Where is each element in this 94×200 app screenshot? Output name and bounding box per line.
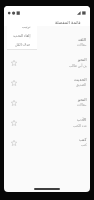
other: Favorite: [9, 118, 18, 127]
staticText: الأدب: [77, 117, 87, 122]
button[interactable]: ترتيب: [7, 22, 37, 31]
staticText: النحو: [78, 97, 87, 102]
other: Favorite: [9, 138, 18, 147]
staticText: اللغة: [78, 37, 87, 42]
button[interactable]: Favorite: [4, 72, 90, 92]
button[interactable]: قائمة المفضلة: [54, 17, 81, 26]
other: Favorite: [9, 58, 18, 67]
staticText: ترتيب: [22, 25, 31, 29]
button[interactable]: Favorite: [4, 32, 90, 52]
button[interactable]: Favorite: [4, 52, 90, 72]
staticText: مقالات: [77, 43, 87, 47]
other: Favorite: [9, 98, 18, 107]
staticText: الحديث: [74, 77, 87, 82]
staticText: إلغاء التحديد: [13, 33, 31, 38]
button[interactable]: Favorite: [4, 112, 90, 132]
button[interactable]: Favorite: [4, 132, 90, 152]
button[interactable]: Favorite: [4, 92, 90, 112]
staticText: النحو: [78, 57, 87, 62]
other: Favorite: [9, 78, 18, 87]
staticText: حذف الكل: [15, 42, 31, 47]
button[interactable]: إلغاء التحديد: [7, 31, 37, 40]
staticText: كتب: [81, 143, 87, 147]
staticText: الصديق: [76, 83, 87, 87]
staticText: عدد الكتب: [73, 123, 87, 127]
staticText: قائمة المفضلة: [55, 19, 81, 25]
button[interactable]: حذف الكل: [7, 40, 37, 49]
staticText: كتب: [79, 137, 87, 142]
staticText: مقالات: [77, 103, 87, 107]
other: Favorite: [9, 38, 18, 47]
staticText: بن أبي طالب: [69, 63, 87, 67]
